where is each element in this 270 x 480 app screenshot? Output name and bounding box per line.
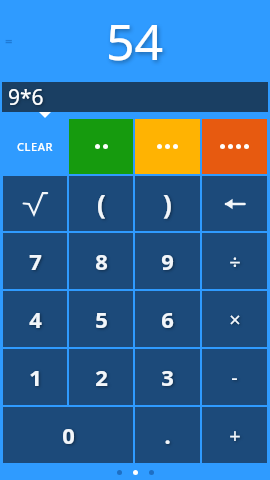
button[interactable]: × xyxy=(202,291,267,347)
staticText: + xyxy=(229,422,241,449)
staticText: CLEAR xyxy=(17,139,54,154)
button[interactable]: . xyxy=(135,407,200,463)
staticText: 4 xyxy=(29,304,42,334)
staticText: 54 xyxy=(106,7,164,75)
staticText: ) xyxy=(163,186,172,221)
staticText: 6 xyxy=(161,304,174,334)
button[interactable]: 3 xyxy=(135,349,200,405)
button[interactable]: 8 xyxy=(69,233,133,289)
button[interactable]: 9*6 xyxy=(2,82,268,112)
staticText: = xyxy=(5,32,13,50)
button[interactable]: Insert 3 digit group xyxy=(135,119,200,174)
button[interactable]: Close parenthesis xyxy=(135,176,200,231)
button[interactable]: 5 xyxy=(69,291,133,347)
button[interactable]: 4 xyxy=(3,291,67,347)
button[interactable]: Square root xyxy=(3,176,67,231)
button[interactable]: 2 xyxy=(69,349,133,405)
staticText: ( xyxy=(97,186,106,221)
staticText: - xyxy=(231,364,238,391)
button[interactable]: 9 xyxy=(135,233,200,289)
button[interactable]: 6 xyxy=(135,291,200,347)
button[interactable]: - xyxy=(202,349,267,405)
staticText: × xyxy=(229,306,241,333)
button[interactable]: + xyxy=(202,407,267,463)
button[interactable]: Backspace xyxy=(202,176,267,231)
staticText: 2 xyxy=(95,362,108,392)
button[interactable]: CLEAR xyxy=(3,119,67,174)
staticText: 8 xyxy=(95,246,108,276)
staticText: 3 xyxy=(161,362,174,392)
staticText: 9 xyxy=(161,246,174,276)
button[interactable]: 7 xyxy=(3,233,67,289)
button[interactable]: 0 xyxy=(3,407,133,463)
staticText: 0 xyxy=(62,420,75,450)
staticText: 1 xyxy=(29,362,42,392)
staticText: 9*6 xyxy=(8,83,44,112)
staticText: 7 xyxy=(29,246,42,276)
button[interactable]: Insert 4 digit group xyxy=(202,119,267,174)
staticText: ÷ xyxy=(229,248,241,275)
staticText: 5 xyxy=(95,304,108,334)
button[interactable]: Open parenthesis xyxy=(69,176,133,231)
staticText: . xyxy=(164,420,171,450)
button[interactable]: ÷ xyxy=(202,233,267,289)
button[interactable]: 1 xyxy=(3,349,67,405)
button[interactable]: Insert 2 digit group xyxy=(69,119,133,174)
